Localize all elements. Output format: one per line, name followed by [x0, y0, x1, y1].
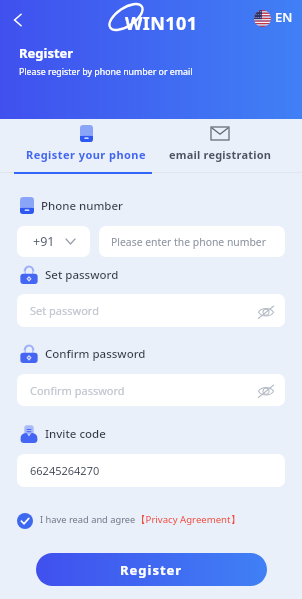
staticText: Please register by phone number or email: [19, 66, 193, 78]
button[interactable]: Register: [36, 553, 267, 586]
staticText: I have read and agree: [40, 513, 136, 526]
button[interactable]: Register your phone: [19, 119, 153, 178]
staticText: Confirm password: [30, 383, 125, 398]
staticText: Phone number: [41, 198, 123, 214]
staticText: +91: [33, 233, 55, 250]
staticText: Please enter the phone number: [111, 235, 266, 249]
button[interactable]: email registration: [153, 119, 287, 178]
staticText: Set password: [30, 303, 99, 318]
staticText: 66245264270: [30, 463, 100, 478]
button[interactable]: +91: [17, 226, 90, 257]
staticText: Register: [120, 561, 183, 579]
button[interactable]: 66245264270: [17, 454, 285, 487]
staticText: Confirm password: [45, 346, 146, 362]
button[interactable]: Show password: [258, 385, 274, 397]
staticText: EN: [275, 8, 293, 26]
staticText: Set password: [45, 267, 119, 283]
button[interactable]: Set password: [17, 294, 285, 327]
button[interactable]: Confirm password: [17, 374, 285, 406]
staticText: Register: [19, 44, 74, 62]
staticText: Invite code: [45, 426, 106, 442]
button[interactable]: I have read and agree: [17, 513, 241, 529]
staticText: WIN101: [125, 11, 198, 36]
button[interactable]: Please enter the phone number: [99, 226, 285, 257]
button[interactable]: Back: [6, 8, 30, 32]
staticText: Register your phone: [26, 147, 146, 162]
staticText: email registration: [169, 147, 272, 162]
staticText: 【Privacy Agreement】: [136, 513, 241, 526]
button[interactable]: Language EN: [254, 9, 293, 27]
button[interactable]: Show password: [258, 306, 274, 318]
